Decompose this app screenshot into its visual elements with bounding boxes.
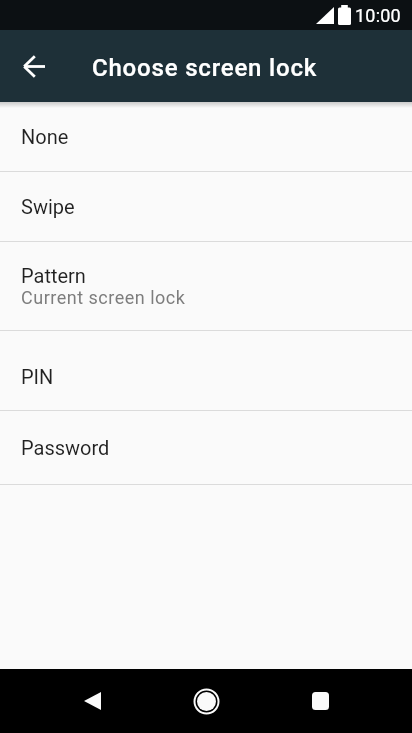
button[interactable] [0, 30, 68, 102]
button[interactable]: None [0, 102, 412, 171]
staticText: Choose screen lock [92, 54, 318, 82]
button[interactable]: PIN [0, 331, 412, 410]
staticText: Password [21, 436, 110, 459]
staticText: Pattern [21, 264, 86, 287]
staticText: 10:00 [355, 5, 401, 26]
staticText: Swipe [21, 195, 75, 218]
button[interactable]: Pattern [0, 242, 412, 330]
staticText: None [21, 125, 69, 148]
staticText: Current screen lock [21, 287, 186, 308]
staticText: PIN [21, 365, 54, 388]
button[interactable]: Password [0, 411, 412, 484]
button[interactable] [68, 669, 116, 733]
button[interactable]: Swipe [0, 172, 412, 241]
button[interactable] [296, 669, 344, 733]
button[interactable] [182, 669, 230, 733]
